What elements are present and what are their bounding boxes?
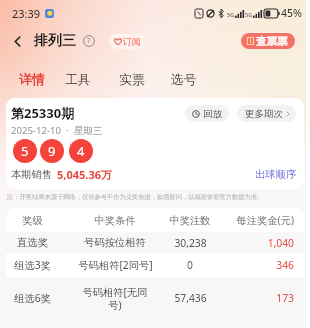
button[interactable]: 回放	[185, 105, 229, 122]
staticText: 号码相符[2同号]	[78, 258, 153, 272]
staticText: 出球顺序	[255, 168, 297, 181]
staticText: 5	[21, 142, 29, 160]
staticText: 中奖条件	[94, 214, 136, 227]
staticText: 第25330期	[11, 104, 75, 122]
button[interactable]: 组选3奖	[6, 253, 304, 277]
button[interactable]: 奖级	[6, 208, 304, 232]
staticText: 详情	[19, 72, 45, 88]
button[interactable]: 工具	[65, 72, 91, 88]
button[interactable]: 详情	[19, 72, 45, 88]
staticText: 号码相符[无同 号)	[82, 285, 148, 312]
staticText: 23:39	[12, 6, 41, 21]
staticText: 奖级	[22, 214, 43, 227]
button[interactable]: 直选奖	[6, 232, 304, 253]
button[interactable]: 查票票	[241, 33, 295, 49]
staticText: 0	[187, 258, 193, 272]
button[interactable]: 更多期次	[237, 105, 296, 122]
staticText: 号码按位相符	[84, 236, 146, 249]
staticText: 更多期次	[245, 108, 283, 120]
staticText: 4	[77, 142, 85, 160]
staticText: 2025-12-10 · 星期三	[11, 124, 103, 137]
staticText: 订阅	[123, 36, 141, 47]
staticText: 5G	[227, 11, 235, 18]
staticText: 173	[276, 291, 294, 305]
staticText: 查票票	[256, 35, 288, 48]
staticText: 工具	[65, 72, 91, 88]
staticText: 5,045.36万	[57, 167, 112, 182]
staticText: 57,436	[174, 291, 207, 305]
button[interactable]: Help	[83, 35, 95, 47]
button[interactable]: 选号	[171, 72, 197, 88]
button[interactable]: 组选6奖	[6, 277, 304, 319]
button[interactable]: 实票	[119, 72, 145, 88]
staticText: 中奖注数	[169, 214, 211, 227]
button[interactable]: 出球顺序	[255, 168, 297, 181]
staticText: 排列三	[34, 32, 76, 50]
staticText: 1,040	[267, 236, 294, 250]
staticText: ?	[87, 36, 91, 46]
staticText: 直选奖	[17, 236, 48, 249]
staticText: 组选6奖	[14, 291, 51, 305]
staticText: 346	[276, 258, 294, 272]
staticText: 9	[48, 142, 56, 160]
staticText: 实票	[119, 72, 145, 88]
staticText: 45%	[281, 6, 302, 20]
staticText: 本期销售	[11, 168, 53, 181]
staticText: 30,238	[174, 236, 207, 250]
staticText: 组选3奖	[14, 258, 51, 272]
staticText: 回放	[203, 108, 222, 120]
staticText: 选号	[171, 72, 197, 88]
button[interactable]: Back	[8, 32, 26, 50]
staticText: 5G	[245, 11, 253, 18]
staticText: 注：开奖结果来源于网络，仅供参考不作为兑奖依据，如遇疑问，以福彩体彩官方数据为准…	[7, 193, 264, 201]
staticText: 每注奖金(元)	[236, 213, 294, 227]
button[interactable]: 订阅	[109, 34, 146, 49]
